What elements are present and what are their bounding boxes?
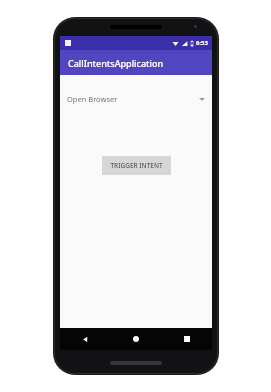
staticText: TRIGGER INTENT (110, 161, 163, 170)
staticText: 6:53 (196, 39, 208, 47)
button[interactable]: Open Browser (60, 90, 212, 108)
button[interactable]: Home (110, 328, 161, 350)
button[interactable]: TRIGGER INTENT (102, 156, 171, 175)
button[interactable]: Back (60, 328, 110, 350)
staticText: CallIntentsApplication (68, 57, 164, 69)
other: Open dropdown (199, 97, 205, 101)
button[interactable]: Recent apps (161, 328, 212, 350)
staticText: Open Browser (67, 94, 118, 104)
